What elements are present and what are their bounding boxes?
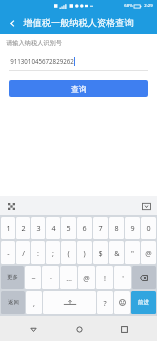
button[interactable]: 911301045672829262 xyxy=(0,54,157,68)
button[interactable]: : xyxy=(31,241,45,264)
button[interactable]: Recents xyxy=(115,320,133,338)
button[interactable]: 7 xyxy=(93,217,108,239)
button[interactable]: / xyxy=(16,241,30,264)
staticText: ~ xyxy=(31,273,36,283)
staticText: $ xyxy=(98,248,103,258)
button[interactable]: 更多 xyxy=(1,266,24,289)
staticText: 0 xyxy=(146,223,151,233)
staticText: 911301045672829262 xyxy=(10,57,74,65)
staticText: 5 xyxy=(66,223,71,233)
staticText: · xyxy=(50,273,52,283)
staticText: ) xyxy=(83,248,86,258)
staticText: - xyxy=(7,248,10,258)
button[interactable]: Space xyxy=(43,291,96,314)
button[interactable]: , xyxy=(26,291,42,314)
staticText: ; xyxy=(52,248,54,258)
staticText: 查询 xyxy=(71,84,87,94)
staticText: … xyxy=(66,273,72,283)
button[interactable]: 查询 xyxy=(9,80,148,97)
button[interactable]: Switch input method xyxy=(4,199,18,213)
button[interactable]: 1 xyxy=(1,217,15,239)
button[interactable]: 5 xyxy=(61,217,76,239)
staticText: / xyxy=(22,248,25,258)
button[interactable]: ) xyxy=(77,241,92,264)
staticText: 2 xyxy=(21,223,26,233)
button[interactable]: ! xyxy=(96,266,113,289)
button[interactable]: Back xyxy=(24,320,42,338)
button[interactable]: 4 xyxy=(46,217,60,239)
button[interactable]: ? xyxy=(97,291,113,314)
button[interactable]: ~ xyxy=(25,266,41,289)
button[interactable]: " xyxy=(125,241,140,264)
button[interactable]: 9 xyxy=(125,217,140,239)
staticText: 4 xyxy=(51,223,56,233)
staticText: 68% xyxy=(124,3,133,9)
staticText: 8 xyxy=(114,223,119,233)
button[interactable]: $ xyxy=(93,241,108,264)
staticText: 返回 xyxy=(8,299,19,306)
staticText: @ xyxy=(83,273,90,283)
button[interactable]: @ xyxy=(141,241,156,264)
staticText: @ xyxy=(145,248,152,258)
button[interactable]: ' xyxy=(114,266,131,289)
staticText: ' xyxy=(122,273,124,283)
staticText: ! xyxy=(104,273,106,283)
button[interactable]: 0 xyxy=(141,217,156,239)
button[interactable]: · xyxy=(42,266,59,289)
staticText: 前进 xyxy=(138,299,149,306)
button[interactable]: … xyxy=(60,266,77,289)
staticText: 请输入纳税人识别号 xyxy=(6,39,62,47)
staticText: : xyxy=(37,248,39,258)
button[interactable]: - xyxy=(1,241,15,264)
button[interactable]: @ xyxy=(78,266,95,289)
button[interactable]: Delete xyxy=(132,266,156,289)
staticText: ( xyxy=(67,248,70,258)
staticText: 1 xyxy=(6,223,11,233)
button[interactable]: 返回 xyxy=(1,291,25,314)
staticText: , xyxy=(33,298,35,308)
button[interactable]: 8 xyxy=(109,217,124,239)
staticText: 7 xyxy=(98,223,103,233)
staticText: 9 xyxy=(130,223,135,233)
staticText: 2:29 xyxy=(144,3,153,9)
button[interactable]: 6 xyxy=(77,217,92,239)
button[interactable]: Emoji xyxy=(114,291,130,314)
button[interactable]: 前进 xyxy=(131,291,156,314)
staticText: 3 xyxy=(36,223,41,233)
button[interactable]: Back xyxy=(2,13,22,33)
staticText: 增值税一般纳税人资格查询 xyxy=(23,17,134,29)
button[interactable]: & xyxy=(109,241,124,264)
staticText: 6 xyxy=(82,223,87,233)
staticText: & xyxy=(114,248,120,258)
button[interactable]: Hide keyboard xyxy=(139,199,153,213)
button[interactable]: 2 xyxy=(16,217,30,239)
button[interactable]: Home xyxy=(70,320,88,338)
button[interactable]: ( xyxy=(61,241,76,264)
staticText: " xyxy=(131,248,134,258)
staticText: 更多 xyxy=(7,274,18,281)
staticText: ? xyxy=(103,298,107,308)
button[interactable]: 3 xyxy=(31,217,45,239)
button[interactable]: ; xyxy=(46,241,60,264)
